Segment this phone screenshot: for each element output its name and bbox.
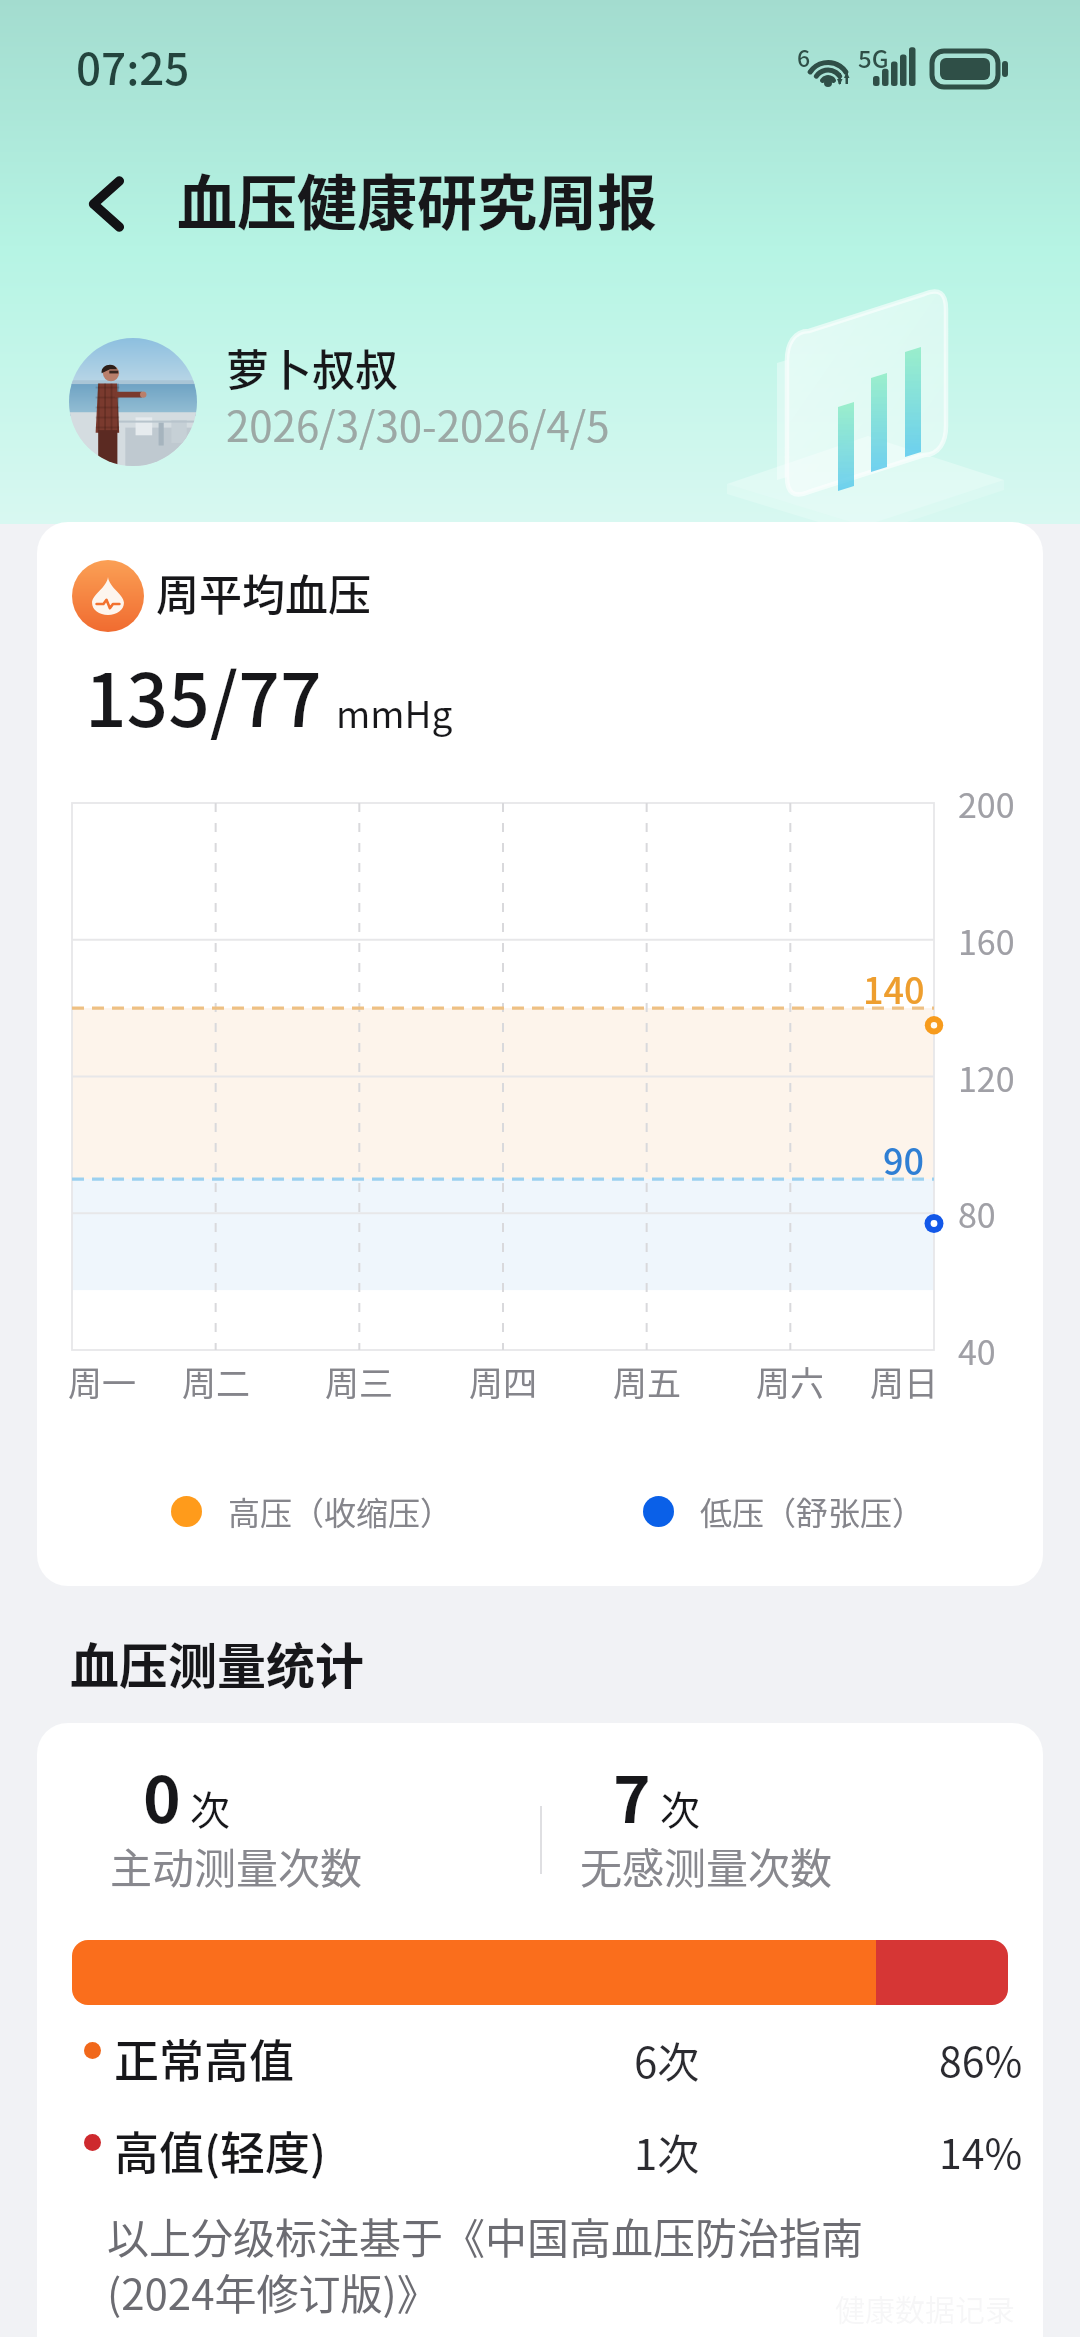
staticText: 6次 — [634, 2029, 700, 2090]
button[interactable]: 0 — [37, 1723, 1043, 2337]
staticText: 周六 — [756, 1357, 824, 1406]
staticText: 80 — [958, 1189, 996, 1238]
button[interactable]: 正常高值 — [37, 2005, 1043, 2095]
staticText: 160 — [958, 916, 1015, 965]
staticText: 200 — [958, 779, 1015, 828]
staticText: 萝卜叔叔 — [226, 336, 398, 398]
staticText: 120 — [958, 1053, 1015, 1102]
button[interactable]: 萝卜叔叔 — [58, 327, 618, 479]
staticText: 0 — [143, 1749, 181, 1842]
staticText: 周一 — [68, 1357, 136, 1406]
button[interactable]: 低压（舒张压） — [639, 1484, 929, 1538]
staticText: 无感测量次数 — [580, 1835, 833, 1896]
staticText: 135/77 — [85, 642, 322, 748]
staticText: 90 — [883, 1133, 925, 1185]
button[interactable]: 高值(轻度) — [37, 2097, 1043, 2187]
staticText: 周日 — [870, 1357, 938, 1406]
staticText: 健康数据记录 — [835, 2286, 1015, 2329]
staticText: 主动测量次数 — [110, 1835, 363, 1896]
staticText: 140 — [863, 962, 925, 1014]
staticText: 低压（舒张压） — [700, 1488, 925, 1534]
staticText: 高值(轻度) — [114, 2118, 327, 2183]
staticText: 周三 — [325, 1357, 393, 1406]
staticText: 周四 — [469, 1357, 537, 1406]
staticText: 周五 — [613, 1357, 681, 1406]
staticText: 次 — [660, 1779, 700, 1837]
staticText: 次 — [190, 1779, 230, 1837]
staticText: 血压测量统计 — [70, 1627, 365, 1698]
button[interactable]: 周平均血压 — [37, 522, 1043, 1586]
staticText: 周二 — [182, 1357, 250, 1406]
staticText: 周平均血压 — [156, 561, 371, 623]
staticText: 86% — [939, 2029, 1023, 2088]
staticText: 正常高值 — [114, 2026, 295, 2091]
staticText: 1次 — [634, 2121, 700, 2182]
staticText: 07:25 — [76, 34, 190, 98]
staticText: 2026/3/30-2026/4/5 — [226, 393, 610, 454]
staticText: 6 — [797, 40, 811, 73]
staticText: 5G — [858, 40, 889, 75]
button[interactable]: Back — [60, 157, 154, 251]
staticText: mmHg — [336, 685, 453, 739]
staticText: 7 — [613, 1749, 651, 1842]
staticText: 40 — [958, 1326, 996, 1375]
staticText: 14% — [939, 2121, 1023, 2180]
button[interactable]: 高压（收缩压） — [167, 1484, 457, 1538]
staticText: 血压健康研究周报 — [177, 155, 657, 242]
staticText: 以上分级标注基于《中国高血压防治指南 (2024年修订版)》 — [107, 2205, 997, 2322]
staticText: 高压（收缩压） — [228, 1488, 453, 1534]
